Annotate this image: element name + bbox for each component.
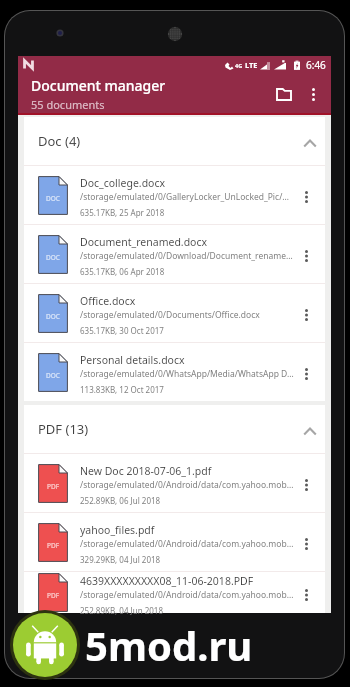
staticText: DOC (46, 312, 60, 321)
staticText: 635.17KB, 30 Oct 2017 (80, 325, 164, 336)
staticText: 635.17KB, 25 Apr 2018 (80, 207, 165, 218)
button[interactable]: PDF (13) (24, 405, 325, 453)
staticText: DOC (46, 371, 60, 380)
staticText: 5mod.ru (85, 618, 253, 672)
staticText: LTE (245, 60, 258, 70)
staticText: /storage/emulated/0/Download/Document_re… (80, 250, 293, 262)
staticText: Doc_college.docx (80, 176, 166, 190)
staticText: Office.docx (80, 294, 136, 308)
staticText: Personal details.docx (80, 353, 185, 367)
button[interactable]: More options (298, 79, 328, 109)
staticText: 55 documents (31, 97, 105, 112)
staticText: New Doc 2018-07-06_1.pdf (80, 464, 212, 478)
staticText: Document_renamed.docx (80, 235, 208, 249)
button[interactable]: More options (295, 175, 325, 215)
button[interactable]: DOC (24, 284, 325, 342)
staticText: PDF (47, 541, 60, 550)
staticText: 635.17KB, 06 Apr 2018 (80, 266, 165, 277)
staticText: /storage/emulated/0/Documents/Office.doc… (80, 309, 260, 321)
button[interactable]: DOC (24, 166, 325, 224)
button[interactable]: More options (295, 522, 325, 562)
staticText: PDF (13) (38, 420, 89, 438)
button[interactable]: More options (295, 352, 325, 392)
staticText: PDF (47, 482, 60, 491)
button[interactable]: PDF (24, 454, 325, 512)
staticText: /storage/emulated/0/Android/data/com.yah… (80, 589, 295, 601)
staticText: /storage/emulated/0/GalleryLocker_UnLock… (80, 191, 290, 203)
staticText: DOC (46, 253, 60, 262)
button[interactable]: More options (295, 573, 325, 613)
staticText: 329.29KB, 04 Jul 2018 (80, 554, 161, 565)
staticText: 4639XXXXXXXXX08_11-06-2018.PDF (80, 574, 254, 588)
staticText: /storage/emulated/0/WhatsApp/Media/Whats… (80, 368, 294, 380)
staticText: /storage/emulated/0/Android/data/com.yah… (80, 538, 295, 550)
button[interactable]: More options (295, 463, 325, 503)
staticText: DOC (46, 194, 60, 203)
staticText: 6:46 (306, 58, 326, 72)
staticText: /storage/emulated/0/Android/data/com.yah… (80, 479, 295, 491)
staticText: Doc (4) (38, 132, 81, 150)
button[interactable]: More options (295, 293, 325, 333)
button[interactable]: Doc (4) (24, 117, 325, 165)
staticText: Document manager (31, 76, 166, 95)
button[interactable]: More options (295, 234, 325, 274)
button[interactable]: Folder (262, 76, 298, 112)
staticText: yahoo_files.pdf (80, 523, 155, 537)
staticText: PDF (47, 591, 60, 600)
staticText: 113.83KB, 12 Oct 2017 (80, 384, 164, 395)
staticText: 252.89KB, 04 Jun 2018 (80, 605, 164, 615)
staticText: 252.89KB, 06 Jul 2018 (80, 495, 161, 506)
button[interactable]: PDF (24, 513, 325, 571)
staticText: 4G (235, 62, 243, 69)
button[interactable]: DOC (24, 343, 325, 401)
button[interactable]: DOC (24, 225, 325, 283)
button[interactable]: PDF (24, 572, 325, 613)
